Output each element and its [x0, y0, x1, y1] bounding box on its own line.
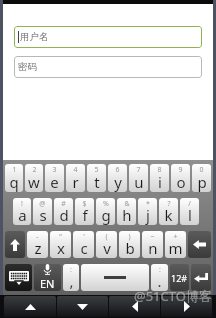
- staticText: d: [59, 205, 69, 225]
- staticText: +: [173, 232, 178, 242]
- staticText: :: [70, 265, 72, 275]
- staticText: g: [101, 205, 111, 225]
- button[interactable]: ’: [73, 231, 94, 258]
- button[interactable]: 2: [25, 164, 43, 192]
- button[interactable]: :: [63, 264, 79, 291]
- button[interactable]: #: [54, 198, 73, 225]
- staticText: (: [105, 232, 108, 242]
- button[interactable]: 0: [192, 164, 211, 192]
- button[interactable]: [81, 264, 149, 291]
- staticText: EN: [40, 276, 55, 291]
- button[interactable]: (: [96, 231, 117, 258]
- staticText: k: [164, 205, 173, 225]
- staticText: 用户名: [20, 31, 49, 43]
- staticText: 密码: [18, 61, 37, 73]
- staticText: @: [39, 199, 46, 209]
- button[interactable]: :: [151, 264, 168, 291]
- staticText: w: [28, 172, 40, 192]
- staticText: t: [94, 172, 100, 192]
- button[interactable]: ~: [142, 231, 163, 258]
- staticText: n: [148, 238, 158, 258]
- button[interactable]: 5: [87, 164, 106, 192]
- staticText: r: [72, 172, 79, 192]
- button[interactable]: 6: [108, 164, 127, 192]
- button[interactable]: -: [27, 231, 48, 258]
- staticText: -: [36, 232, 39, 242]
- button[interactable]: 4: [66, 164, 85, 192]
- button[interactable]: 密码: [14, 56, 202, 78]
- staticText: ?: [167, 199, 171, 209]
- staticText: j: [146, 205, 150, 225]
- staticText: z: [34, 238, 42, 258]
- button[interactable]: Switch keyboard: [5, 264, 32, 291]
- staticText: @51CTO博客: [134, 287, 212, 305]
- button[interactable]: 7: [129, 164, 148, 192]
- staticText: q: [9, 172, 19, 192]
- button[interactable]: *: [138, 198, 157, 225]
- button[interactable]: 3: [45, 164, 64, 192]
- staticText: /: [188, 199, 191, 209]
- staticText: s: [39, 205, 47, 225]
- staticText: 0: [199, 165, 204, 175]
- button[interactable]: Right: [161, 296, 212, 317]
- staticText: #: [61, 199, 66, 209]
- staticText: ,: [69, 271, 74, 291]
- staticText: $: [82, 199, 87, 209]
- staticText: :: [159, 265, 161, 275]
- button[interactable]: Voice input, English: [34, 264, 61, 291]
- staticText: m: [168, 238, 183, 258]
- staticText: c: [80, 238, 88, 258]
- button[interactable]: +: [165, 231, 186, 258]
- button[interactable]: Up: [4, 296, 56, 317]
- staticText: ’: [83, 232, 85, 242]
- button[interactable]: Down: [57, 296, 108, 317]
- staticText: 1: [12, 165, 17, 175]
- staticText: y: [114, 172, 122, 192]
- staticText: l: [188, 205, 192, 225]
- button[interactable]: /: [180, 198, 199, 225]
- staticText: e: [50, 172, 59, 192]
- button[interactable]: Backspace: [188, 231, 211, 258]
- staticText: b: [125, 238, 135, 258]
- button[interactable]: ?: [159, 198, 178, 225]
- staticText: 3: [52, 165, 57, 175]
- staticText: u: [134, 172, 144, 192]
- button[interactable]: “: [50, 231, 71, 258]
- staticText: *: [146, 199, 150, 209]
- button[interactable]: Enter: [191, 264, 211, 291]
- button[interactable]: ): [119, 231, 140, 258]
- staticText: 7: [136, 165, 141, 175]
- staticText: h: [122, 205, 132, 225]
- staticText: &: [124, 199, 130, 209]
- button[interactable]: 用户名: [14, 26, 202, 48]
- staticText: 2: [32, 165, 37, 175]
- button[interactable]: @: [33, 198, 52, 225]
- button[interactable]: $: [75, 198, 94, 225]
- staticText: ~: [150, 232, 155, 242]
- staticText: o: [176, 172, 186, 192]
- staticText: .: [157, 271, 162, 291]
- staticText: 9: [178, 165, 183, 175]
- button[interactable]: 1: [5, 164, 23, 192]
- staticText: ): [128, 232, 131, 242]
- staticText: i: [158, 172, 162, 192]
- button[interactable]: 12#: [170, 264, 189, 291]
- button[interactable]: Left: [109, 296, 160, 317]
- staticText: %: [103, 199, 109, 209]
- staticText: x: [57, 238, 65, 258]
- staticText: f: [82, 205, 88, 225]
- button[interactable]: 8: [150, 164, 169, 192]
- button[interactable]: Shift: [5, 231, 25, 258]
- staticText: 6: [115, 165, 120, 175]
- staticText: !: [21, 199, 23, 209]
- button[interactable]: 9: [171, 164, 190, 192]
- button[interactable]: !: [13, 198, 31, 225]
- button[interactable]: %: [96, 198, 115, 225]
- staticText: a: [18, 205, 27, 225]
- staticText: v: [103, 238, 111, 258]
- staticText: 5: [94, 165, 99, 175]
- button[interactable]: &: [117, 198, 136, 225]
- staticText: p: [197, 172, 207, 192]
- staticText: “: [59, 232, 62, 242]
- staticText: 4: [73, 165, 78, 175]
